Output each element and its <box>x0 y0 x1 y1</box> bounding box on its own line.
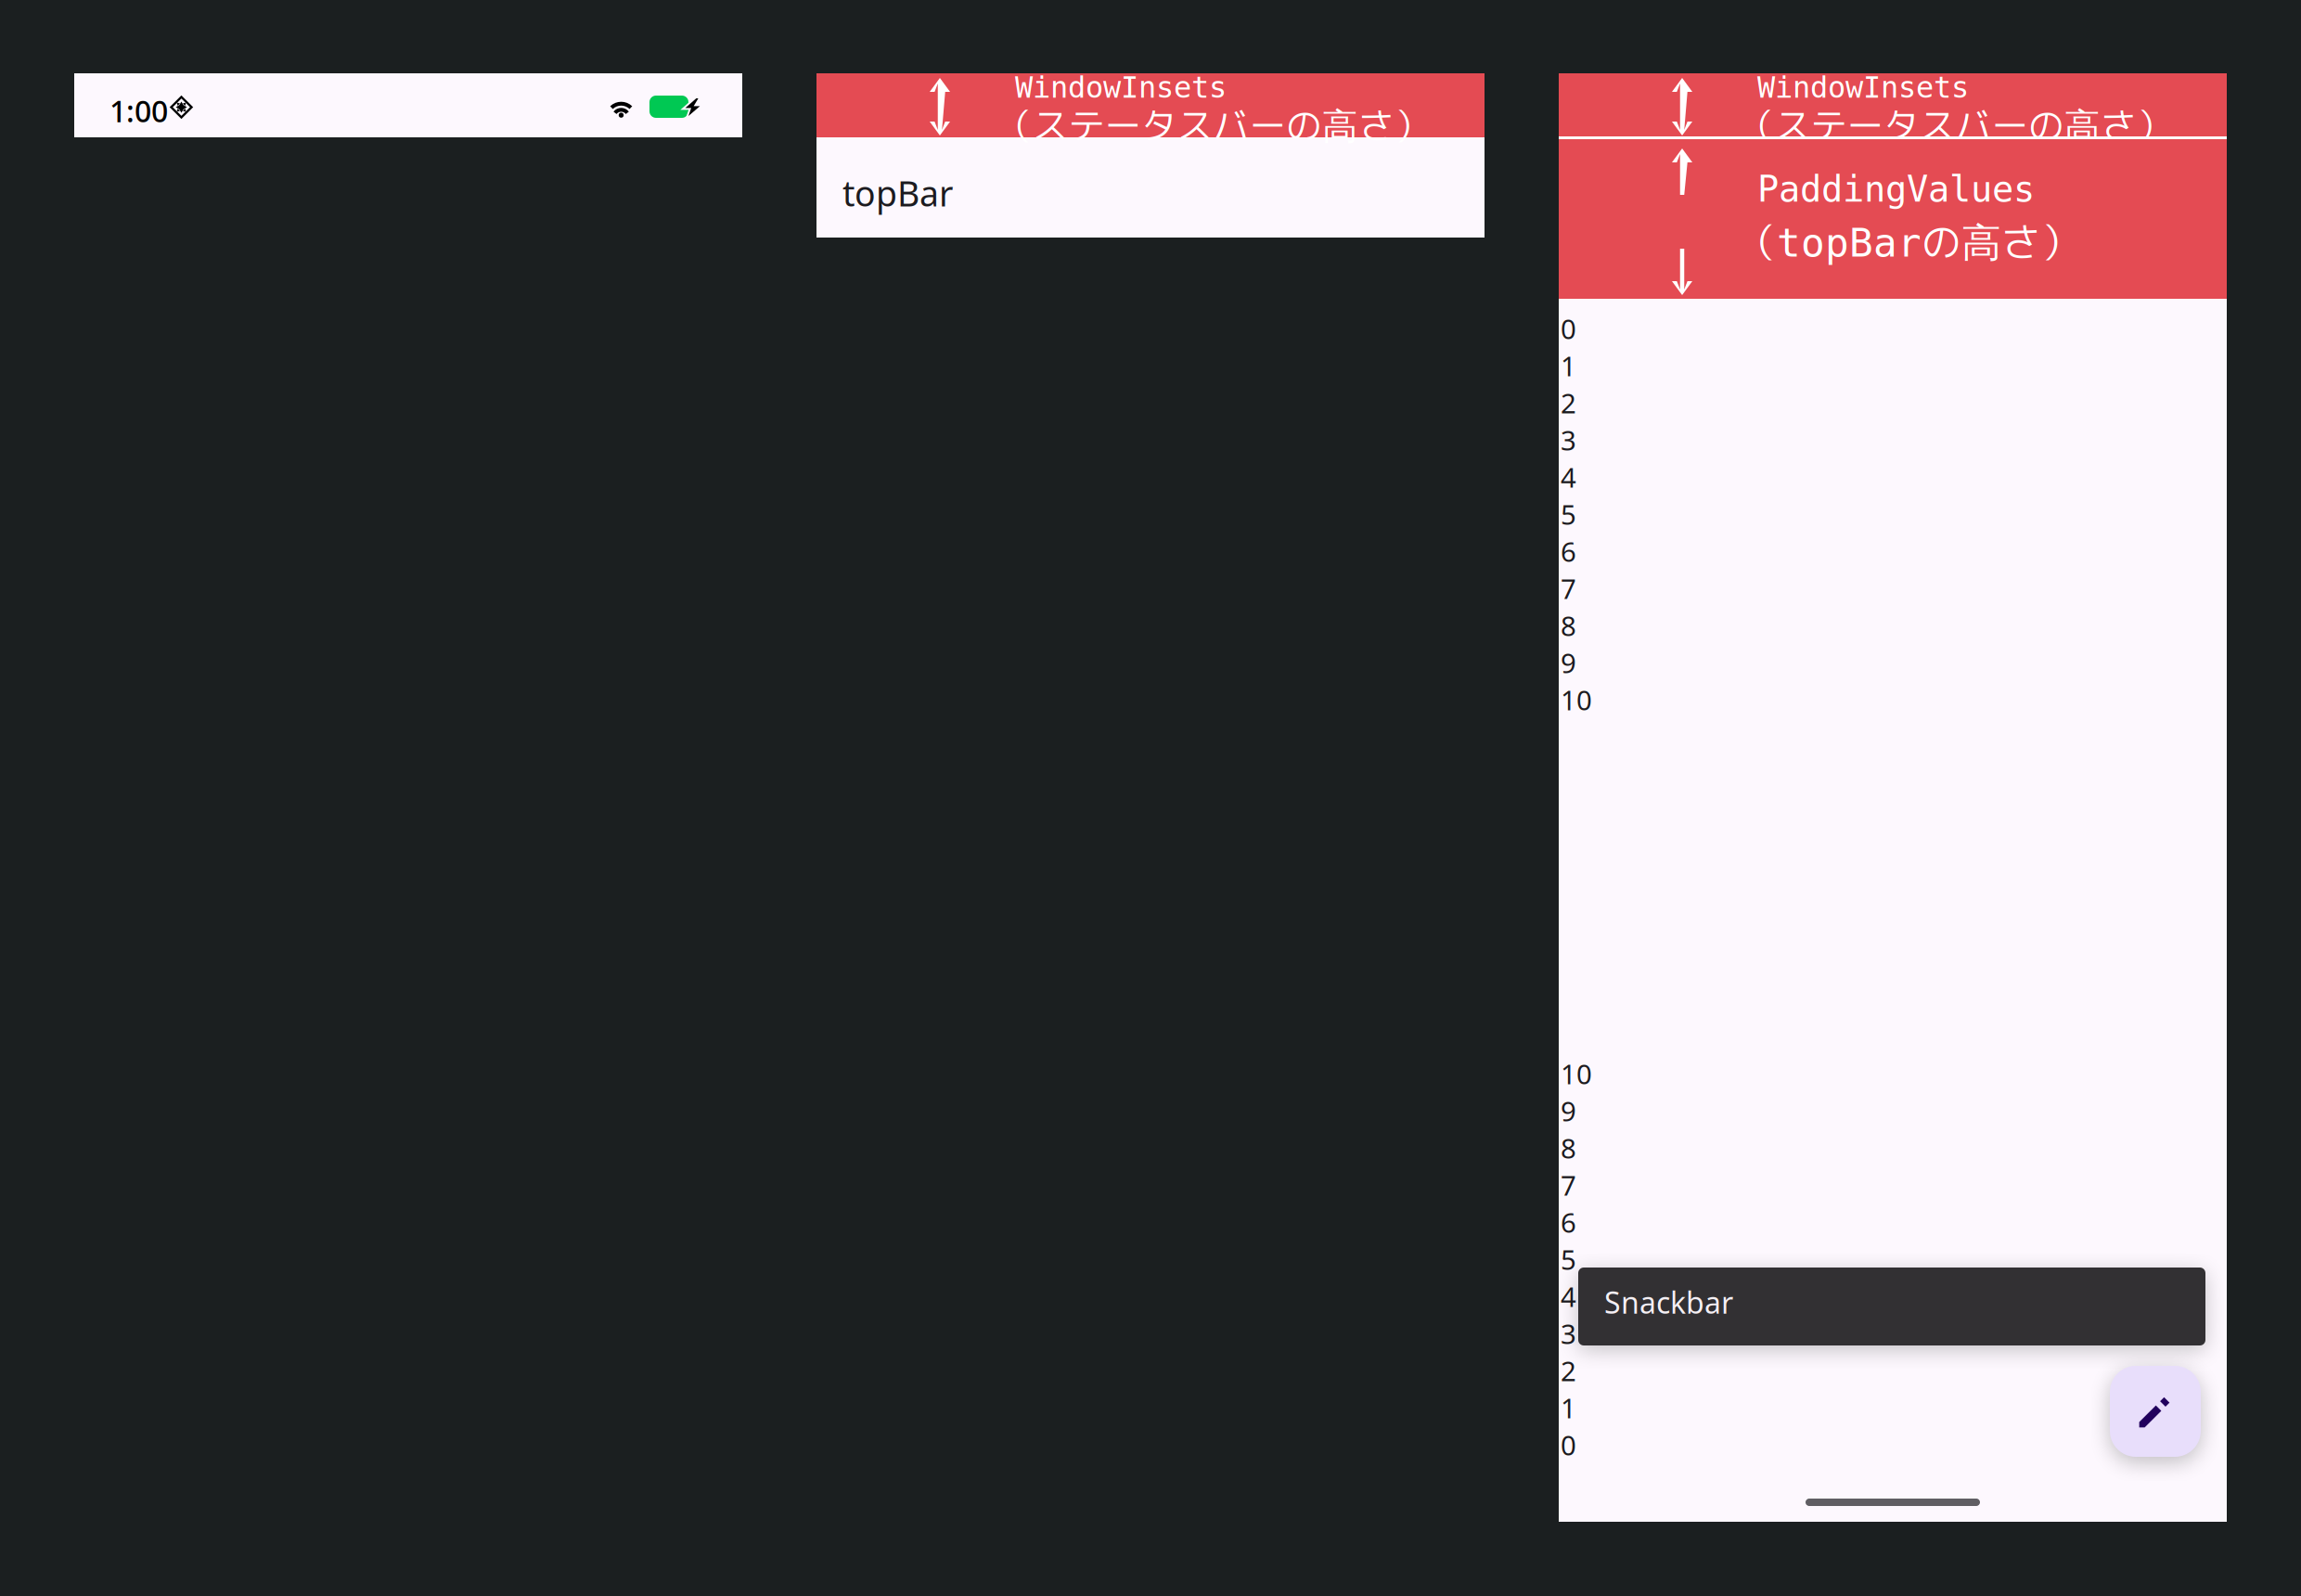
button[interactable]: 5 <box>1561 496 1672 533</box>
button[interactable]: 7 <box>1561 1166 1672 1203</box>
staticText: （ステータスバーの高さ） <box>996 105 1431 149</box>
staticText: 1 <box>1561 1390 1576 1426</box>
button[interactable]: 7 <box>1561 570 1672 607</box>
staticText: 0 <box>1561 310 1576 347</box>
button[interactable]: 3 <box>1561 1315 1672 1352</box>
staticText: 5 <box>1561 1241 1576 1277</box>
staticText: 2 <box>1561 385 1576 421</box>
staticText: 3 <box>1561 422 1576 458</box>
staticText: topBar <box>842 170 953 216</box>
button[interactable]: 6 <box>1561 1203 1672 1241</box>
button[interactable]: 0 <box>1561 1426 1672 1463</box>
staticText: 4 <box>1561 459 1576 495</box>
button[interactable]: topBar <box>816 143 1485 243</box>
button[interactable]: 6 <box>1561 533 1672 570</box>
staticText: WindowInsets <box>1757 71 1969 104</box>
staticText: 5 <box>1561 496 1576 532</box>
staticText: （topBarの高さ） <box>1737 219 2081 268</box>
staticText: 9 <box>1561 1093 1576 1129</box>
staticText: 10 <box>1561 1055 1592 1092</box>
button[interactable]: 9 <box>1561 1092 1672 1129</box>
staticText: 0 <box>1561 1427 1576 1463</box>
button[interactable]: 1 <box>1561 347 1672 384</box>
staticText: 1 <box>1561 348 1576 384</box>
staticText: 8 <box>1561 607 1576 644</box>
staticText: 6 <box>1561 1204 1576 1240</box>
button[interactable]: 2 <box>1561 1352 1672 1389</box>
button[interactable]: 8 <box>1561 1129 1672 1166</box>
button[interactable]: Compose <box>2110 1366 2201 1457</box>
button[interactable]: 1 <box>1561 1389 1672 1426</box>
button[interactable]: 3 <box>1561 421 1672 458</box>
staticText: （ステータスバーの高さ） <box>1739 105 2173 149</box>
staticText: PaddingValues <box>1757 169 2035 210</box>
staticText: 4 <box>1561 1278 1576 1314</box>
button[interactable]: 0 <box>1561 310 1672 347</box>
staticText: 8 <box>1561 1130 1576 1166</box>
staticText: WindowInsets <box>1015 71 1227 104</box>
button[interactable]: 5 <box>1561 1241 1672 1278</box>
staticText: 9 <box>1561 644 1576 681</box>
button[interactable]: 4 <box>1561 458 1672 496</box>
staticText: 7 <box>1561 570 1576 606</box>
button[interactable]: Snackbar <box>1578 1268 2205 1345</box>
staticText: 3 <box>1561 1315 1576 1351</box>
button[interactable]: 2 <box>1561 384 1672 421</box>
button[interactable]: 9 <box>1561 644 1672 681</box>
button[interactable]: 10 <box>1561 1055 1672 1092</box>
staticText: 2 <box>1561 1352 1576 1389</box>
staticText: Snackbar <box>1604 1282 1733 1322</box>
button[interactable]: 4 <box>1561 1278 1672 1315</box>
button[interactable]: 10 <box>1561 681 1672 718</box>
staticText: 10 <box>1561 682 1592 718</box>
button[interactable]: 8 <box>1561 607 1672 644</box>
staticText: 1:00 <box>109 91 168 130</box>
staticText: 6 <box>1561 533 1576 569</box>
staticText: 7 <box>1561 1167 1576 1203</box>
